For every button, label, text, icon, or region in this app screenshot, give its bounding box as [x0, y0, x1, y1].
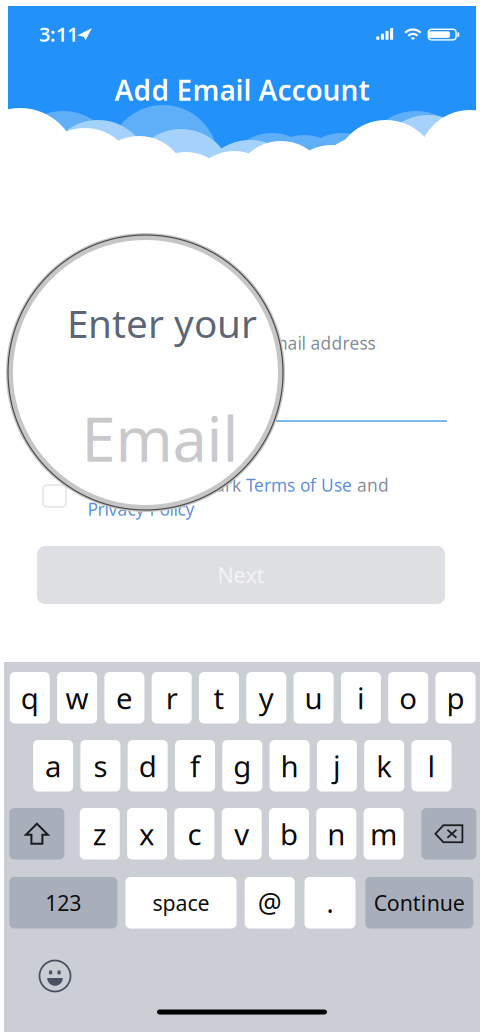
- button[interactable]: s: [80, 740, 120, 791]
- staticText: j: [333, 746, 341, 785]
- staticText: and: [352, 473, 389, 496]
- button[interactable]: h: [270, 740, 310, 791]
- staticText: @: [258, 885, 282, 920]
- staticText: p: [446, 678, 464, 717]
- button[interactable]: j: [317, 740, 357, 791]
- button[interactable]: z: [80, 808, 120, 859]
- button[interactable]: .: [304, 877, 355, 928]
- button[interactable]: Continue: [365, 877, 473, 928]
- staticText: t: [213, 678, 224, 717]
- staticText: a: [45, 746, 61, 785]
- button[interactable]: 123: [9, 877, 117, 928]
- button[interactable]: m: [364, 808, 404, 859]
- button[interactable]: f: [175, 740, 215, 791]
- button[interactable]: i: [341, 672, 381, 723]
- staticText: 3:11: [39, 21, 78, 47]
- staticText: Privacy Policy: [87, 497, 194, 520]
- button[interactable]: u: [294, 672, 334, 723]
- staticText: m: [370, 814, 397, 853]
- staticText: y: [259, 678, 274, 717]
- staticText: Enter your email address: [170, 331, 375, 354]
- button[interactable]: Delete: [421, 808, 476, 859]
- button[interactable]: n: [316, 808, 356, 859]
- button[interactable]: r: [152, 672, 192, 723]
- button[interactable]: Privacy Policy: [87, 497, 194, 520]
- button[interactable]: c: [174, 808, 214, 859]
- staticText: space: [152, 889, 209, 917]
- staticText: k: [376, 746, 392, 785]
- staticText: v: [234, 814, 249, 853]
- staticText: z: [93, 814, 107, 853]
- staticText: b: [280, 814, 298, 853]
- staticText: e: [116, 678, 133, 717]
- staticText: c: [187, 814, 201, 853]
- button[interactable]: space: [125, 877, 236, 928]
- button[interactable]: Agree to terms: [43, 485, 66, 507]
- staticText: I agree to the Lark: [89, 473, 246, 496]
- button[interactable]: v: [222, 808, 262, 859]
- button[interactable]: Emoji: [38, 959, 72, 993]
- staticText: h: [281, 746, 299, 785]
- button[interactable]: e: [104, 672, 144, 723]
- button[interactable]: I agree to the Lark: [89, 473, 389, 496]
- staticText: n: [327, 814, 345, 853]
- button[interactable]: y: [246, 672, 286, 723]
- staticText: i: [357, 678, 365, 717]
- staticText: o: [399, 678, 417, 717]
- button[interactable]: q: [10, 672, 50, 723]
- staticText: x: [139, 814, 155, 853]
- button[interactable]: o: [388, 672, 428, 723]
- button[interactable]: b: [269, 808, 309, 859]
- staticText: Continue: [374, 889, 465, 917]
- staticText: d: [139, 746, 157, 785]
- staticText: r: [166, 678, 178, 717]
- button[interactable]: l: [411, 740, 451, 791]
- staticText: w: [66, 678, 89, 717]
- staticText: f: [190, 746, 200, 785]
- staticText: q: [21, 678, 39, 717]
- staticText: Enter your: [67, 297, 257, 349]
- staticText: s: [93, 746, 107, 785]
- staticText: Email: [81, 397, 238, 479]
- button[interactable]: d: [128, 740, 168, 791]
- staticText: Terms of Use: [246, 473, 352, 496]
- button[interactable]: t: [199, 672, 239, 723]
- staticText: Add Email Account: [114, 71, 369, 109]
- staticText: u: [305, 678, 323, 717]
- staticText: g: [233, 746, 251, 785]
- button[interactable]: a: [33, 740, 73, 791]
- button[interactable]: @: [245, 877, 295, 928]
- button[interactable]: x: [127, 808, 167, 859]
- button[interactable]: g: [222, 740, 262, 791]
- staticText: Next: [217, 561, 264, 589]
- staticText: l: [427, 746, 435, 785]
- button[interactable]: k: [364, 740, 404, 791]
- staticText: .: [326, 885, 333, 920]
- button[interactable]: p: [435, 672, 475, 723]
- button[interactable]: Shift: [9, 808, 64, 859]
- button[interactable]: w: [57, 672, 97, 723]
- staticText: 123: [45, 889, 81, 917]
